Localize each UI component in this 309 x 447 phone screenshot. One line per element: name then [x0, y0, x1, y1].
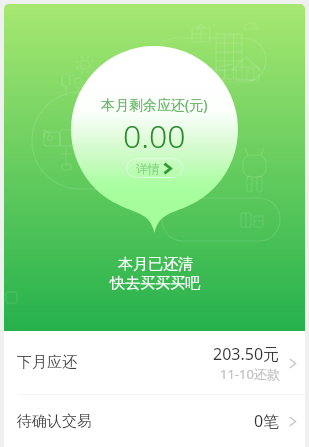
staticText: 0笔	[254, 410, 280, 432]
staticText: 本月剩余应还(元)	[101, 95, 208, 114]
staticText: 203.50元	[213, 343, 280, 365]
staticText: 详情	[136, 161, 160, 176]
button[interactable]: 详情	[126, 158, 183, 178]
button[interactable]: 待确认交易	[4, 395, 305, 447]
staticText: 11-10还款	[220, 365, 280, 383]
staticText: 快去买买买吧	[110, 274, 200, 293]
staticText: 0.00	[123, 114, 186, 158]
staticText: 本月已还清	[118, 255, 193, 274]
button[interactable]: 下月应还	[4, 331, 305, 394]
staticText: 待确认交易	[17, 412, 92, 431]
staticText: 下月应还	[17, 353, 77, 372]
